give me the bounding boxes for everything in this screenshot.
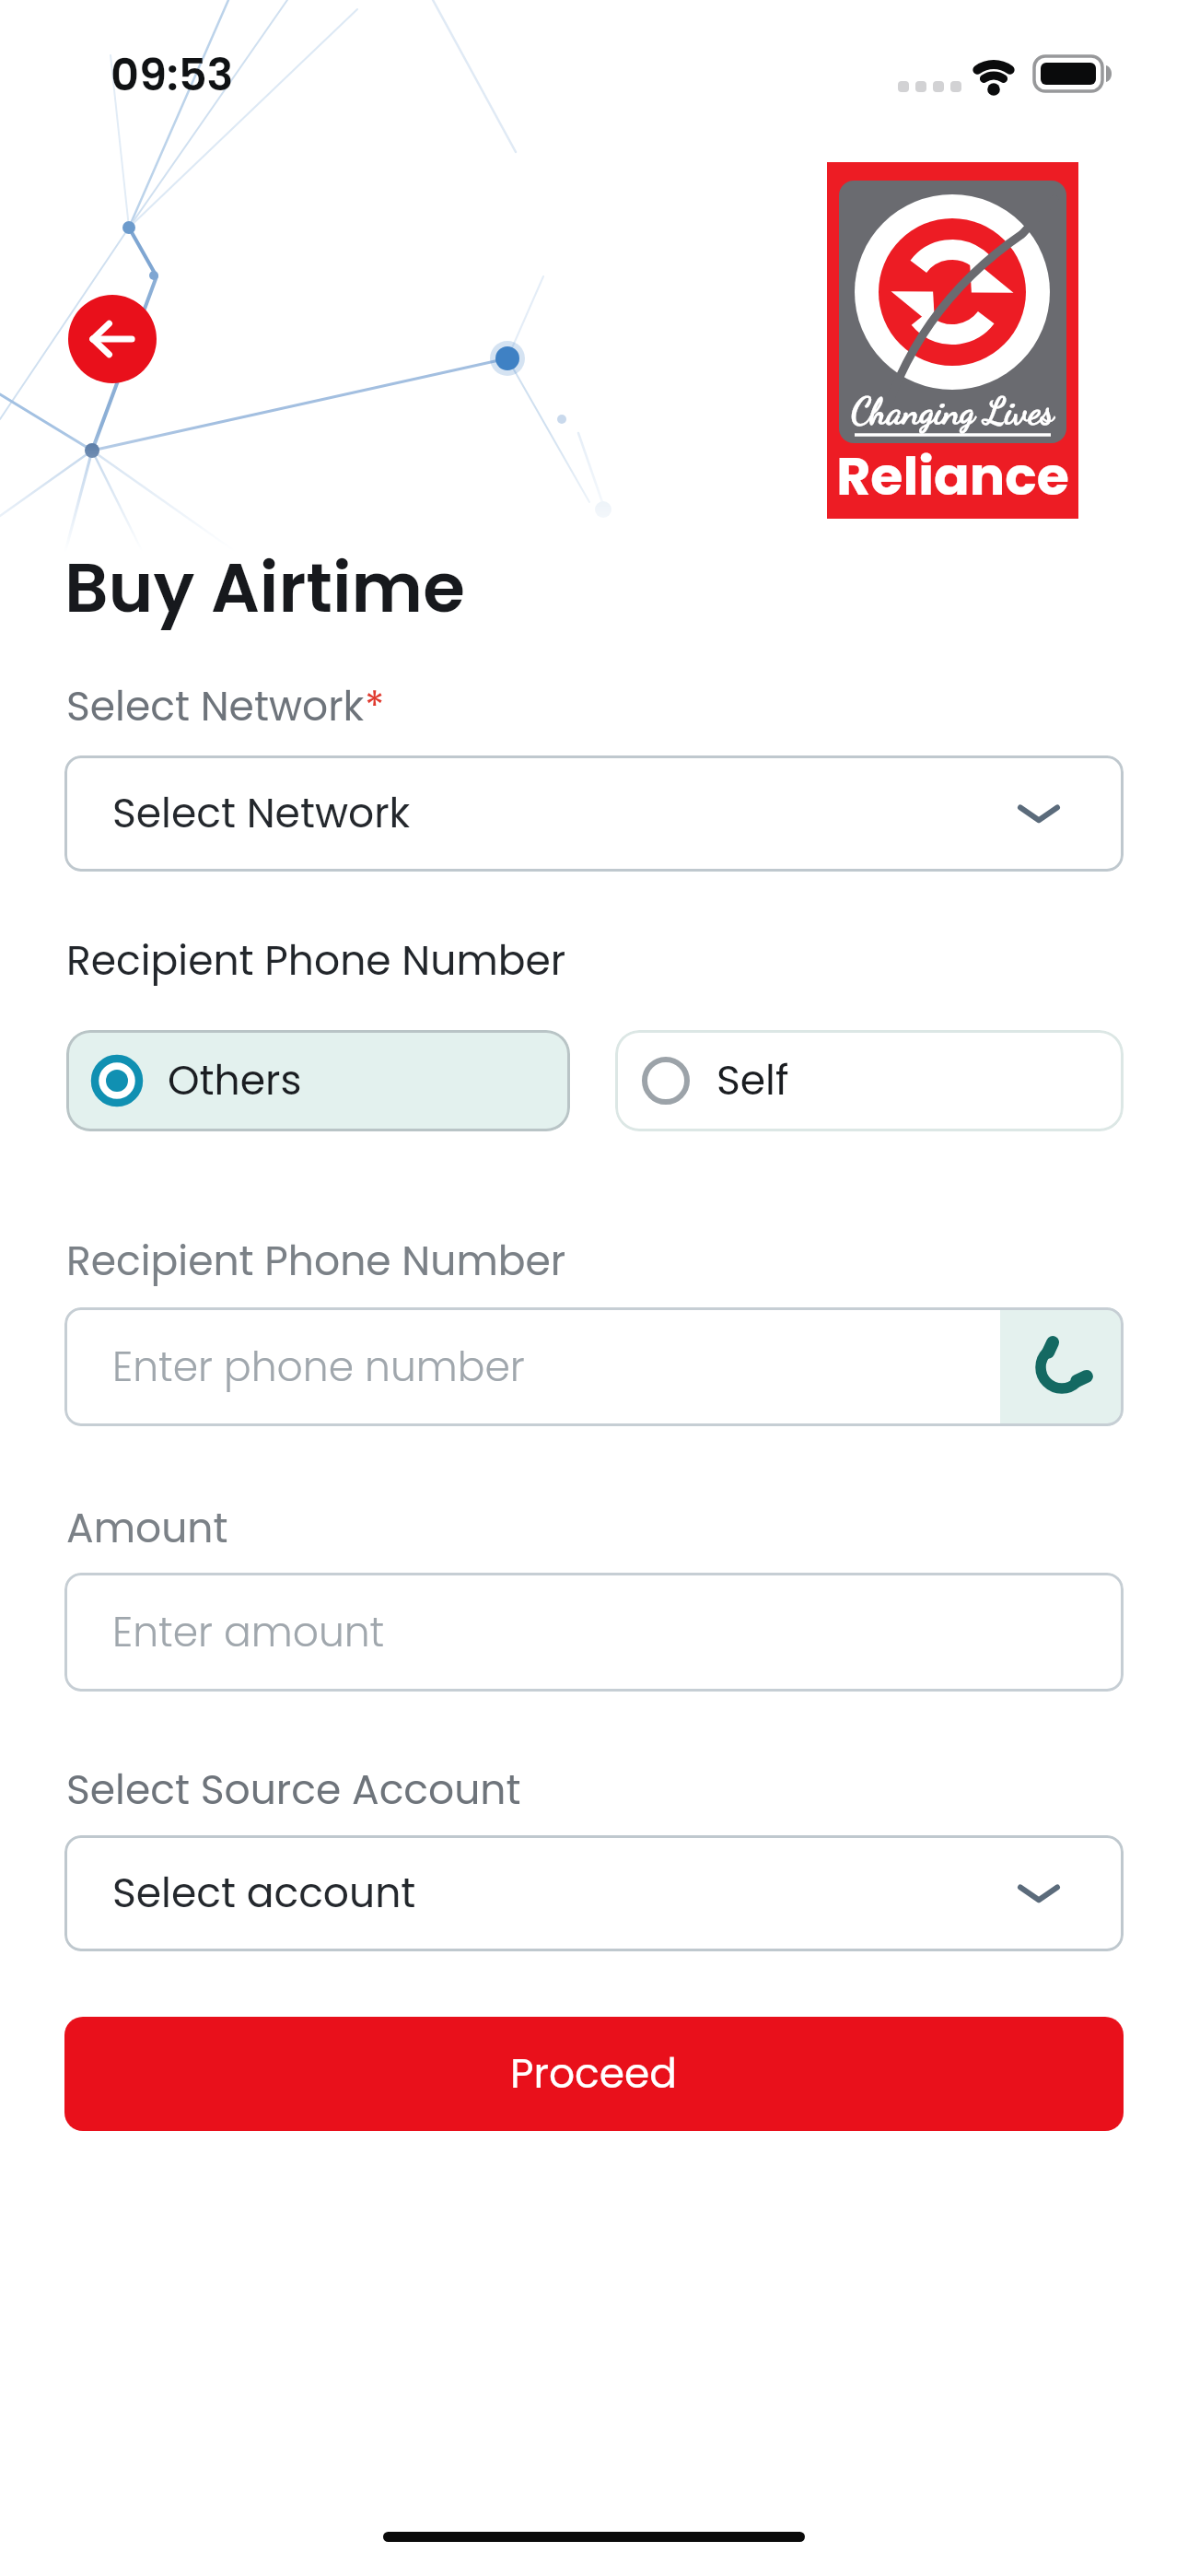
button[interactable]: Self	[615, 1030, 1124, 1131]
button[interactable]: Proceed	[64, 2017, 1124, 2131]
staticText: Buy Airtime	[64, 540, 465, 636]
staticText: *	[365, 678, 385, 735]
staticText: Select Source Account	[66, 1762, 521, 1819]
staticText: Changing Lives	[827, 389, 1078, 433]
staticText: Recipient Phone Number	[66, 932, 566, 989]
button[interactable]: Enter phone number	[64, 1307, 1124, 1426]
staticText: Self	[716, 1052, 789, 1109]
staticText: Recipient Phone Number	[66, 1233, 566, 1290]
staticText: Select Network	[112, 785, 411, 842]
button[interactable]: Select Network	[64, 755, 1124, 872]
button[interactable]: Enter amount	[64, 1573, 1124, 1692]
staticText: Amount	[66, 1500, 228, 1557]
staticText: Others	[168, 1052, 302, 1109]
staticText: Enter amount	[112, 1604, 385, 1661]
staticText: Select Network	[66, 678, 365, 735]
staticText: Select account	[112, 1865, 416, 1922]
button[interactable]: Others	[66, 1030, 570, 1131]
button[interactable]	[68, 295, 157, 383]
staticText: 09:53	[111, 44, 234, 106]
button[interactable]: Select account	[64, 1835, 1124, 1951]
staticText: Reliance	[827, 439, 1078, 513]
staticText: Enter phone number	[112, 1339, 525, 1396]
staticText: Proceed	[510, 2045, 678, 2102]
